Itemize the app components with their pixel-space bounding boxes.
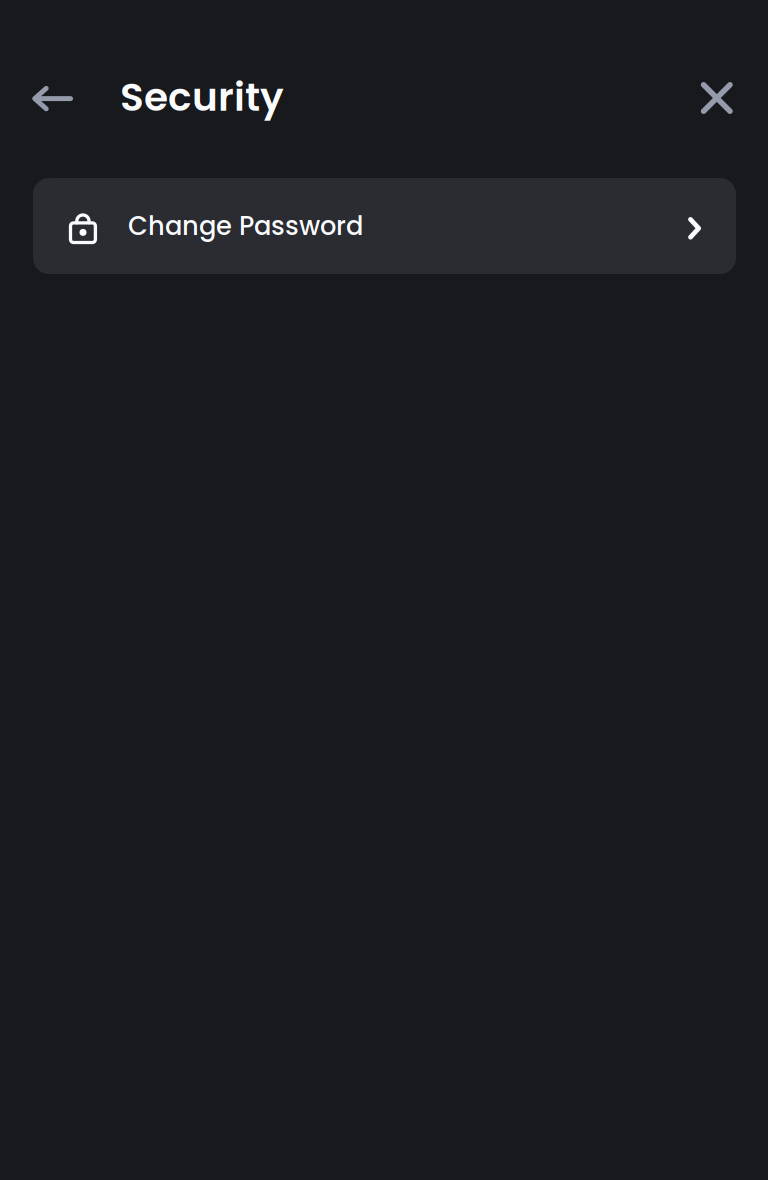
button[interactable]: Close [672, 66, 734, 128]
staticText: Security [120, 70, 284, 124]
button[interactable]: Back [32, 66, 95, 128]
staticText: Change Password [128, 208, 363, 244]
button[interactable]: Change Password [33, 178, 736, 274]
